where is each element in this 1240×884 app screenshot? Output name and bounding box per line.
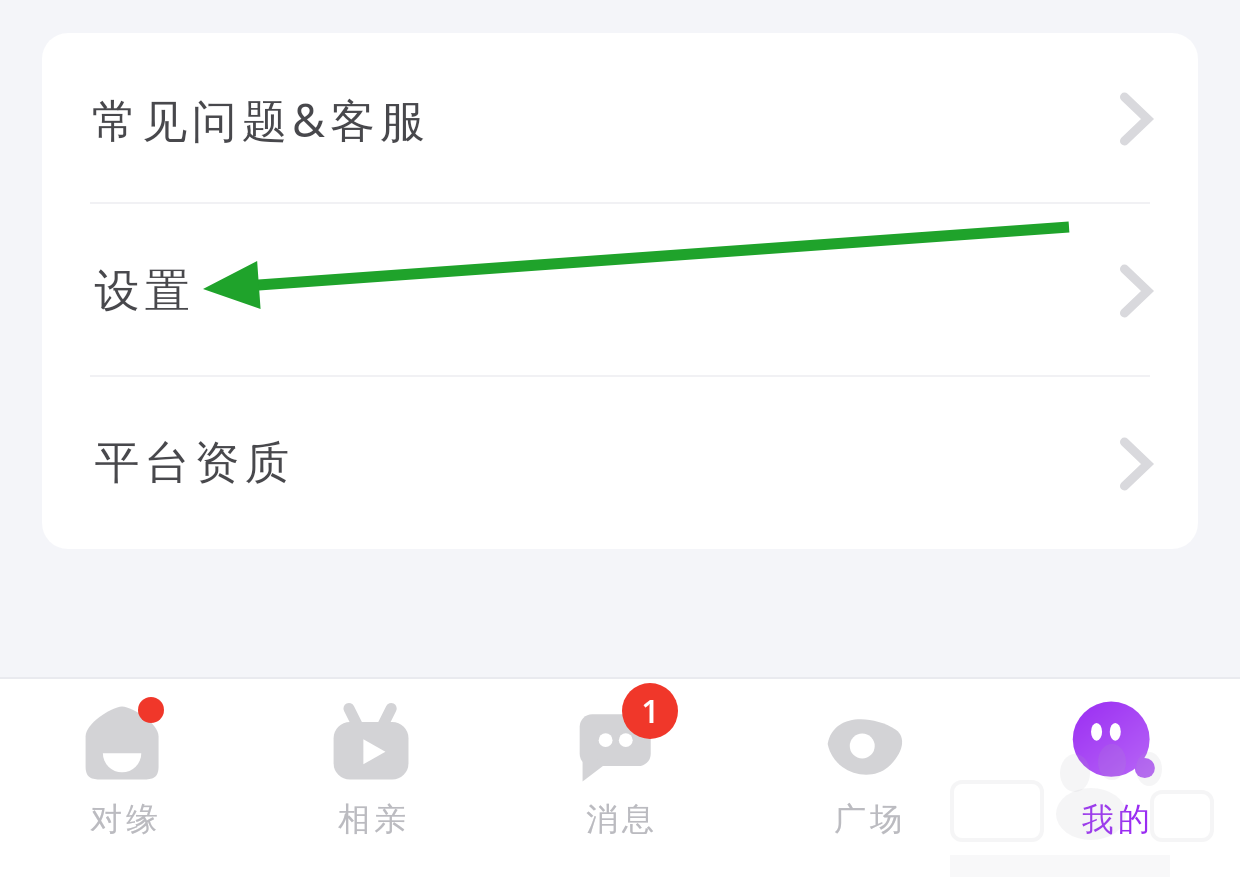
- button[interactable]: 我的: [992, 679, 1240, 884]
- button[interactable]: 常见问题&客服: [42, 33, 1198, 205]
- staticText: 1: [641, 689, 660, 733]
- button[interactable]: 对缘: [0, 679, 248, 884]
- staticText: 广场: [832, 799, 904, 839]
- staticText: 消息: [584, 799, 656, 839]
- button[interactable]: 设置: [42, 205, 1198, 377]
- staticText: 平台资质: [92, 435, 292, 492]
- staticText: 相亲: [336, 799, 408, 839]
- button[interactable]: 平台资质: [42, 378, 1198, 549]
- staticText: 我的: [1080, 799, 1152, 839]
- button[interactable]: 消息: [496, 679, 744, 884]
- staticText: 常见问题&客服: [92, 89, 430, 150]
- button[interactable]: 相亲: [248, 679, 496, 884]
- button[interactable]: 广场: [744, 679, 992, 884]
- staticText: 对缘: [88, 799, 160, 839]
- staticText: 设置: [92, 263, 192, 320]
